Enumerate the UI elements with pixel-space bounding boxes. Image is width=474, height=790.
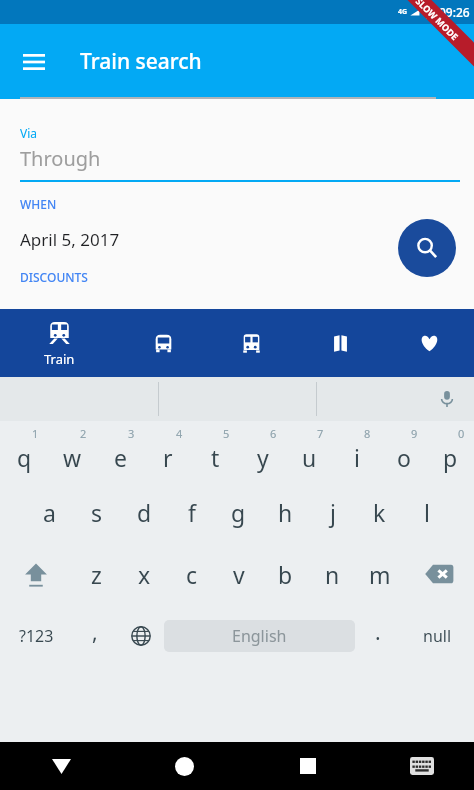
button[interactable]: Map [296,309,385,377]
button[interactable]: Subway [207,309,296,377]
staticText: 4G [398,7,408,17]
button[interactable]: Bus [119,309,207,377]
staticText: c [186,559,198,590]
button[interactable]: Favorites [385,309,474,377]
staticText: English [232,625,287,647]
button[interactable]: Recent apps [246,742,369,790]
button[interactable]: x [120,543,168,605]
button[interactable]: Train [0,309,119,377]
staticText: h [278,497,293,528]
button[interactable]: 2 [48,421,96,481]
button[interactable]: c [168,543,215,605]
button[interactable]: b [262,543,309,605]
staticText: 09:26 [439,4,470,20]
staticText: j [330,497,336,528]
button[interactable]: Open navigation menu [10,38,58,86]
staticText: April 5, 2017 [20,228,120,251]
button[interactable]: 7 [286,421,333,481]
button[interactable]: Search [398,219,456,277]
staticText: u [302,442,317,473]
staticText: ?123 [19,625,54,647]
staticText: s [91,497,103,528]
button[interactable]: f [168,481,215,543]
staticText: Train [44,350,75,368]
button[interactable]: 4 [144,421,192,481]
staticText: p [443,442,458,473]
button[interactable]: April 5, 2017 [20,228,120,251]
button[interactable]: j [309,481,356,543]
button[interactable]: Switch keyboard [369,742,474,790]
staticText: 4 [176,426,183,441]
button[interactable] [317,377,474,421]
staticText: WHEN [20,196,57,212]
staticText: k [373,497,386,528]
staticText: x [138,559,151,590]
staticText: 7 [317,426,324,441]
button[interactable]: d [121,481,168,543]
button[interactable]: h [262,481,309,543]
button[interactable]: Voice input [430,382,464,416]
button[interactable]: z [72,543,120,605]
button[interactable]: a [25,481,73,543]
staticText: l [424,497,430,528]
button[interactable]: l [403,481,450,543]
button[interactable]: English [164,620,355,652]
button[interactable]: g [215,481,262,543]
staticText: q [17,442,32,473]
button[interactable]: Shift [0,543,72,605]
staticText: null [423,625,452,647]
button[interactable]: v [215,543,262,605]
staticText: w [63,442,82,473]
button[interactable]: 3 [96,421,144,481]
button[interactable]: 8 [333,421,380,481]
staticText: m [369,559,391,590]
staticText: Via [20,125,38,141]
button[interactable]: null [401,605,474,667]
staticText: DISCOUNTS [20,269,88,285]
staticText: 1 [32,426,39,441]
button[interactable]: 0 [427,421,474,481]
staticText: 0 [458,426,465,441]
staticText: , [92,618,98,647]
staticText: Train search [80,47,202,76]
staticText: Through [20,145,101,172]
button[interactable]: Change keyboard language [118,605,164,667]
staticText: i [354,442,360,473]
button[interactable]: 1 [0,421,48,481]
staticText: v [233,559,245,590]
staticText: 3 [128,426,135,441]
staticText: y [257,442,269,473]
staticText: . [375,618,381,647]
button[interactable]: k [356,481,403,543]
staticText: 6 [270,426,277,441]
staticText: 8 [364,426,371,441]
button[interactable]: n [309,543,356,605]
button[interactable]: Hide keyboard [0,742,123,790]
staticText: t [211,442,220,473]
staticText: d [137,497,152,528]
button[interactable]: 6 [239,421,286,481]
button[interactable]: Through [20,145,460,182]
staticText: 5 [223,426,230,441]
button[interactable]: s [73,481,121,543]
staticText: r [163,442,173,473]
button[interactable]: Home [123,742,246,790]
staticText: z [91,559,102,590]
staticText: e [114,442,127,473]
button[interactable]: ?123 [0,605,72,667]
button[interactable]: Backspace [403,543,474,605]
staticText: 2 [80,426,87,441]
button[interactable]: , [72,605,118,667]
staticText: f [188,497,196,528]
button[interactable]: m [356,543,403,605]
button[interactable]: . [355,605,401,667]
staticText: n [325,559,340,590]
button[interactable]: 5 [192,421,239,481]
staticText: b [278,559,293,590]
button[interactable]: 9 [380,421,427,481]
staticText: 9 [411,426,418,441]
staticText: SLOW MODE [414,0,462,43]
staticText: g [231,497,246,528]
